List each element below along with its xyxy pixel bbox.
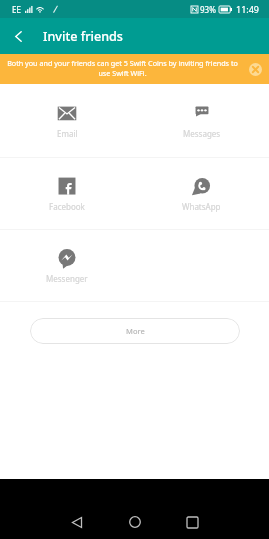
staticText: EE bbox=[12, 4, 21, 15]
button[interactable]: Messages bbox=[134, 84, 269, 157]
staticText: Email bbox=[57, 128, 78, 139]
staticText: More bbox=[126, 326, 145, 336]
staticText: WhatsApp bbox=[182, 201, 221, 212]
staticText: Messages bbox=[183, 128, 221, 139]
staticText: 93% bbox=[200, 4, 216, 15]
staticText: Facebook bbox=[49, 201, 85, 212]
button[interactable]: Home bbox=[112, 499, 158, 539]
button[interactable]: Back bbox=[0, 18, 37, 54]
staticText: Invite friends bbox=[43, 28, 123, 45]
button[interactable]: Close banner bbox=[248, 62, 262, 76]
button[interactable]: Messenger bbox=[0, 230, 134, 301]
button[interactable]: Recent apps bbox=[169, 499, 215, 539]
staticText: Messenger bbox=[46, 273, 88, 284]
staticText: Both you and your friends can get 5 Swif… bbox=[6, 58, 239, 78]
staticText: 11:49 bbox=[236, 3, 260, 15]
button[interactable]: More bbox=[30, 318, 240, 344]
button[interactable]: WhatsApp bbox=[134, 158, 269, 229]
button[interactable]: Facebook bbox=[0, 158, 134, 229]
button[interactable]: Email bbox=[0, 84, 134, 157]
button[interactable]: Back bbox=[54, 499, 100, 539]
